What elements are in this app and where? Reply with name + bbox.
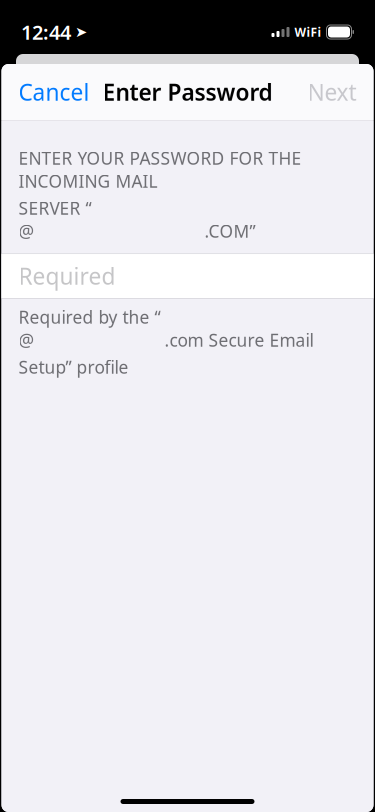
staticText: Setup” profile [18, 356, 128, 379]
button[interactable]: Required [1, 254, 373, 298]
button[interactable]: Next [291, 65, 372, 119]
button[interactable]: Cancel [2, 65, 105, 119]
staticText: ENTER YOUR PASSWORD FOR THE INCOMING MAI… [18, 146, 301, 192]
staticText: WiFi [294, 24, 321, 40]
staticText: Enter Password [102, 77, 272, 107]
staticText: SERVER “ @ .COM” [18, 196, 255, 242]
staticText: Cancel [18, 77, 89, 107]
staticText: Required [18, 261, 115, 291]
staticText: ➤ [75, 24, 87, 40]
staticText: 12:44 [21, 19, 71, 45]
staticText: Next [307, 77, 356, 107]
staticText: Required by the “ @ .com Secure Email [18, 306, 313, 352]
